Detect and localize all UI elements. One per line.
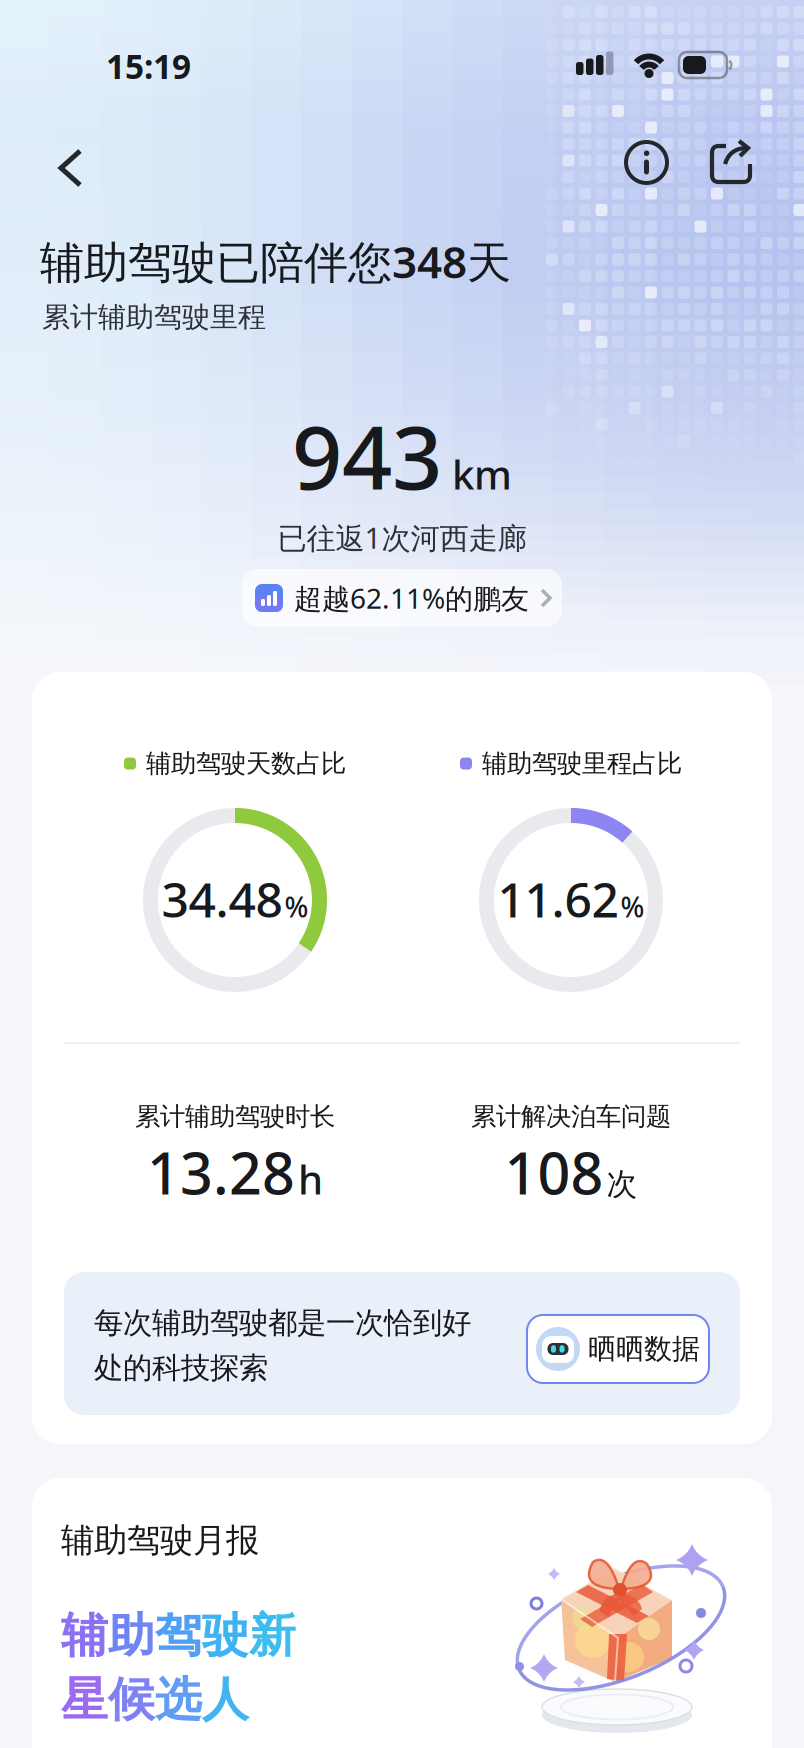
staticText: 辅助驾驶已陪伴您348天 xyxy=(40,232,511,290)
staticText: 已往返1次河西走廊 xyxy=(277,518,526,557)
staticText: 超越62.11%的鹏友 xyxy=(294,579,529,617)
button[interactable]: 晒晒数据 xyxy=(527,1315,709,1383)
staticText: 新 xyxy=(249,1607,296,1664)
staticText: 11.62 xyxy=(497,867,618,931)
staticText: 13.28 xyxy=(147,1134,295,1210)
button[interactable]: 超越62.11%的鹏友 xyxy=(242,569,562,627)
staticText: 累计辅助驾驶里程 xyxy=(42,300,266,334)
staticText: 累计解决泊车问题 xyxy=(471,1101,671,1132)
staticText: 处的科技探索 xyxy=(94,1350,268,1386)
button[interactable]: Share xyxy=(710,140,752,184)
staticText: 辅 xyxy=(61,1607,108,1664)
staticText: 助 xyxy=(108,1607,155,1664)
staticText: 人 xyxy=(202,1671,249,1728)
staticText: 选 xyxy=(155,1671,202,1728)
staticText: 辅助驾驶月报 xyxy=(61,1520,259,1561)
staticText: 108 xyxy=(504,1134,603,1210)
staticText: 34.48 xyxy=(161,867,282,931)
staticText: 累计辅助驾驶时长 xyxy=(135,1101,335,1132)
staticText: % xyxy=(620,888,644,925)
button[interactable]: Back xyxy=(59,150,83,186)
staticText: 辅助驾驶里程占比 xyxy=(482,748,682,779)
staticText: 次 xyxy=(606,1165,637,1203)
staticText: 943 xyxy=(292,397,442,514)
staticText: km xyxy=(452,447,512,501)
staticText: 驾 xyxy=(155,1607,202,1664)
button[interactable]: Info xyxy=(626,142,667,183)
staticText: 候 xyxy=(108,1671,155,1728)
staticText: 15:19 xyxy=(106,44,191,88)
staticText: 每次辅助驾驶都是一次恰到好 xyxy=(94,1305,471,1341)
staticText: h xyxy=(298,1152,323,1205)
staticText: 驶 xyxy=(202,1607,249,1664)
staticText: % xyxy=(284,888,308,925)
staticText: 星 xyxy=(61,1671,108,1728)
staticText: 辅助驾驶天数占比 xyxy=(146,748,346,779)
staticText: 晒晒数据 xyxy=(588,1332,700,1366)
